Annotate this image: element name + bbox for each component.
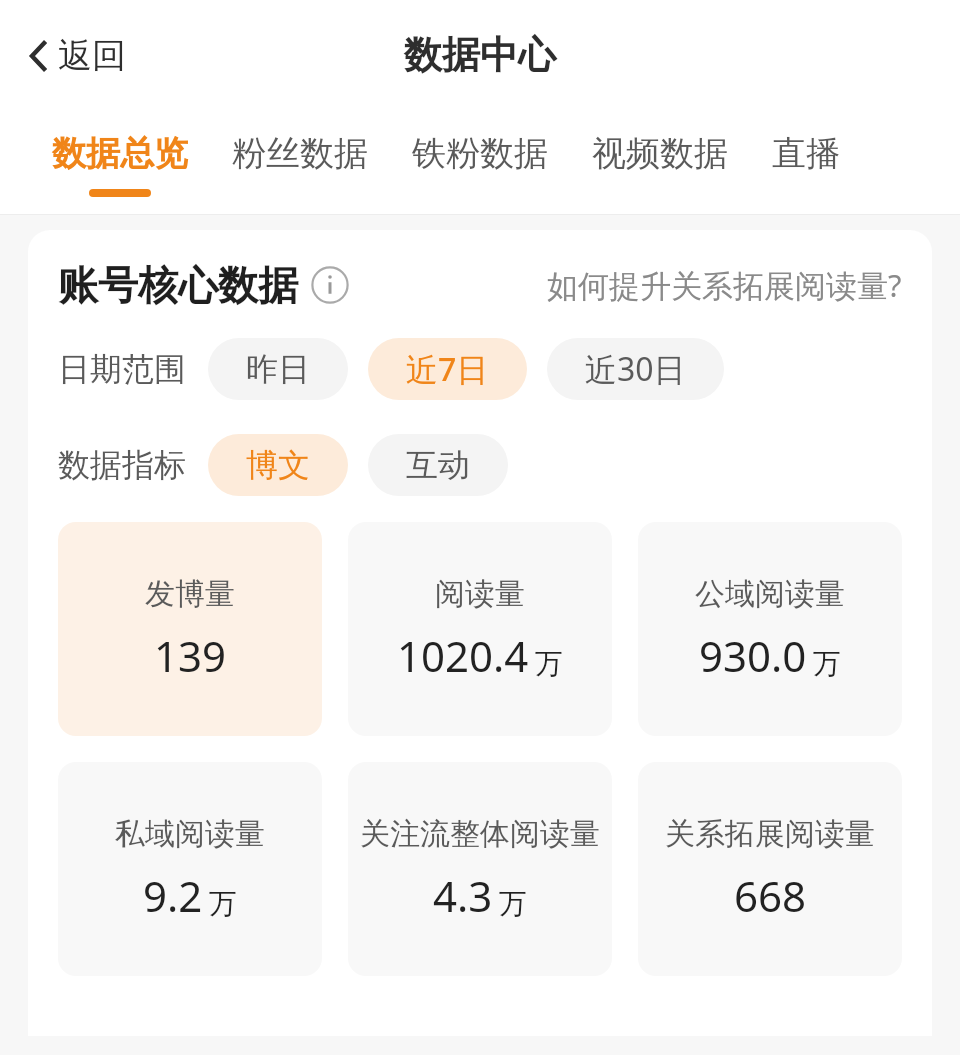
staticText: 万 <box>209 886 237 921</box>
button[interactable]: 数据总览 <box>30 110 210 197</box>
button[interactable]: 博文 <box>208 434 348 496</box>
button[interactable]: 返回 <box>22 28 132 83</box>
button[interactable]: 公域阅读量 <box>638 522 902 736</box>
staticText: 直播 <box>772 132 840 175</box>
staticText: 近7日 <box>406 347 489 391</box>
button[interactable]: 粉丝数据 <box>210 110 390 189</box>
staticText: 1020.4 <box>397 627 529 684</box>
staticText: 数据指标 <box>58 445 186 485</box>
staticText: 关注流整体阅读量 <box>360 815 600 853</box>
staticText: 视频数据 <box>592 132 728 175</box>
button[interactable]: 发博量 <box>58 522 322 736</box>
staticText: 粉丝数据 <box>232 132 368 175</box>
button[interactable]: 阅读量 <box>348 522 612 736</box>
staticText: 关系拓展阅读量 <box>665 815 875 853</box>
button[interactable]: 关系拓展阅读量 <box>638 762 902 976</box>
staticText: 私域阅读量 <box>115 815 265 853</box>
staticText: 数据中心 <box>404 31 556 79</box>
staticText: 4.3 <box>433 867 493 924</box>
staticText: 日期范围 <box>58 349 186 389</box>
staticText: 发博量 <box>145 575 235 613</box>
staticText: 668 <box>734 867 807 924</box>
button[interactable]: 关注流整体阅读量 <box>348 762 612 976</box>
button[interactable]: 昨日 <box>208 338 348 400</box>
staticText: 近30日 <box>585 347 686 391</box>
staticText: 铁粉数据 <box>412 132 548 175</box>
staticText: 昨日 <box>246 349 310 389</box>
staticText: 930.0 <box>699 627 807 684</box>
button[interactable]: 近7日 <box>368 338 527 400</box>
staticText: 万 <box>499 886 527 921</box>
staticText: 返回 <box>58 34 126 77</box>
staticText: 139 <box>154 627 227 684</box>
button[interactable]: 直播 <box>750 110 862 189</box>
button[interactable]: 视频数据 <box>570 110 750 189</box>
staticText: 9.2 <box>143 867 203 924</box>
staticText: 如何提升关系拓展阅读量? <box>547 264 902 306</box>
staticText: 互动 <box>406 445 470 485</box>
button[interactable]: 如何提升关系拓展阅读量? <box>547 264 902 306</box>
staticText: 阅读量 <box>435 575 525 613</box>
staticText: 公域阅读量 <box>695 575 845 613</box>
button[interactable]: 铁粉数据 <box>390 110 570 189</box>
button[interactable]: 说明 <box>308 263 352 307</box>
staticText: 账号核心数据 <box>58 260 298 310</box>
staticText: 博文 <box>246 445 310 485</box>
button[interactable]: 互动 <box>368 434 508 496</box>
staticText: 万 <box>813 646 841 681</box>
staticText: 数据总览 <box>52 132 188 175</box>
staticText: 万 <box>535 646 563 681</box>
button[interactable]: 私域阅读量 <box>58 762 322 976</box>
button[interactable]: 近30日 <box>547 338 724 400</box>
